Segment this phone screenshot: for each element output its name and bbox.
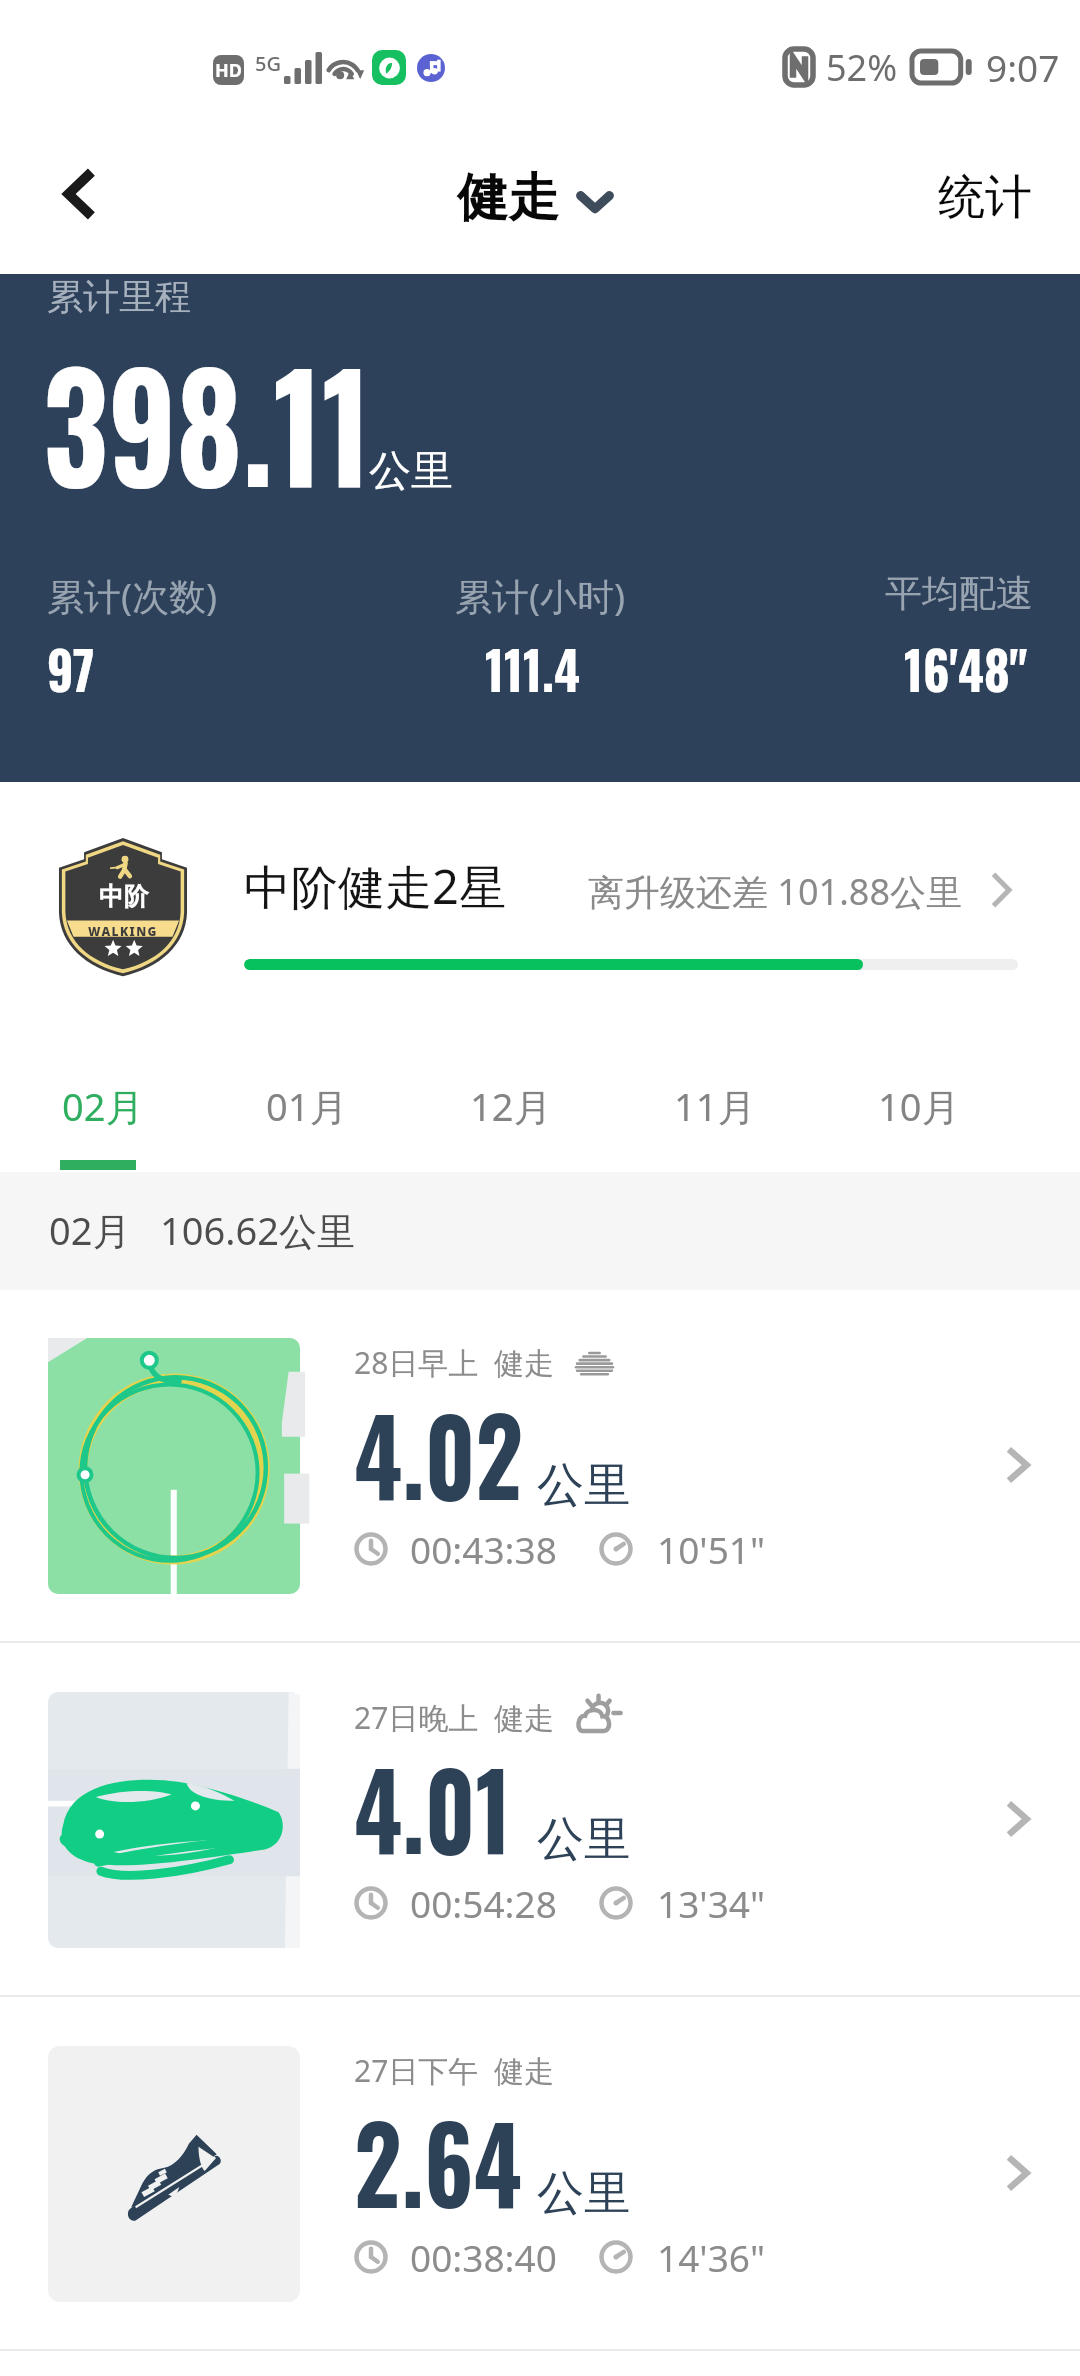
staticText: 健走 xyxy=(457,166,559,230)
staticText: 平均配速 xyxy=(885,570,1033,617)
staticText: 累计(次数) xyxy=(47,570,218,621)
staticText: 00:38:40 xyxy=(410,2232,557,2282)
button[interactable]: 健走 xyxy=(447,160,621,236)
staticText: 97 xyxy=(47,630,94,707)
staticText: 16'48" xyxy=(904,630,1027,707)
button[interactable]: 27日下午 健走 xyxy=(0,1998,1080,2350)
staticText: 累计(小时) xyxy=(455,570,626,621)
button[interactable]: 统计 xyxy=(926,158,1044,237)
staticText: 27日下午 健走 xyxy=(354,2050,554,2091)
button[interactable]: 27日晚上 健走 xyxy=(0,1644,1080,1996)
staticText: 离升级还差 101.88公里 xyxy=(588,867,962,916)
staticText: 4.01 xyxy=(354,1728,511,1885)
button[interactable]: 11月 xyxy=(640,1040,810,1172)
staticText: 11月 xyxy=(674,1080,756,1132)
staticText: 52% xyxy=(826,43,898,92)
staticText: 00:54:28 xyxy=(410,1878,557,1928)
staticText: 27日晚上 健走 xyxy=(354,1697,554,1738)
staticText: 12月 xyxy=(470,1080,552,1132)
staticText: 13'34" xyxy=(657,1878,766,1928)
staticText: 2.64 xyxy=(354,2082,522,2239)
button[interactable]: 中阶 xyxy=(0,782,1080,1002)
button[interactable]: 28日早上 健走 xyxy=(0,1290,1080,1642)
staticText: 02月 xyxy=(62,1080,144,1132)
staticText: 02月 106.62公里 xyxy=(49,1204,355,1256)
staticText: 01月 xyxy=(266,1080,348,1132)
staticText: 公里 xyxy=(369,445,453,498)
button[interactable]: 02月 xyxy=(28,1040,198,1172)
staticText: 10月 xyxy=(878,1080,960,1132)
staticText: 公里 xyxy=(537,1456,631,1515)
staticText: 398.11 xyxy=(43,313,371,529)
staticText: 9:07 xyxy=(986,42,1060,92)
staticText: WALKING xyxy=(88,923,158,939)
staticText: 28日早上 健走 xyxy=(354,1342,554,1383)
button[interactable]: 10月 xyxy=(844,1040,1014,1172)
staticText: HD xyxy=(215,58,242,83)
staticText: 公里 xyxy=(537,1810,631,1869)
staticText: 公里 xyxy=(537,2164,631,2223)
staticText: 累计里程 xyxy=(47,274,191,319)
staticText: 00:43:38 xyxy=(410,1524,557,1574)
staticText: 10'51" xyxy=(657,1524,766,1574)
staticText: 111.4 xyxy=(485,630,580,707)
staticText: 4.02 xyxy=(354,1374,524,1531)
staticText: 中阶健走2星 xyxy=(244,854,506,918)
staticText: 中阶 xyxy=(99,881,149,912)
staticText: 统计 xyxy=(938,168,1032,227)
button[interactable]: 01月 xyxy=(232,1040,402,1172)
button[interactable]: Back xyxy=(36,149,126,239)
staticText: 5G xyxy=(255,50,281,77)
staticText: 14'36" xyxy=(657,2232,766,2282)
button[interactable]: 12月 xyxy=(436,1040,606,1172)
